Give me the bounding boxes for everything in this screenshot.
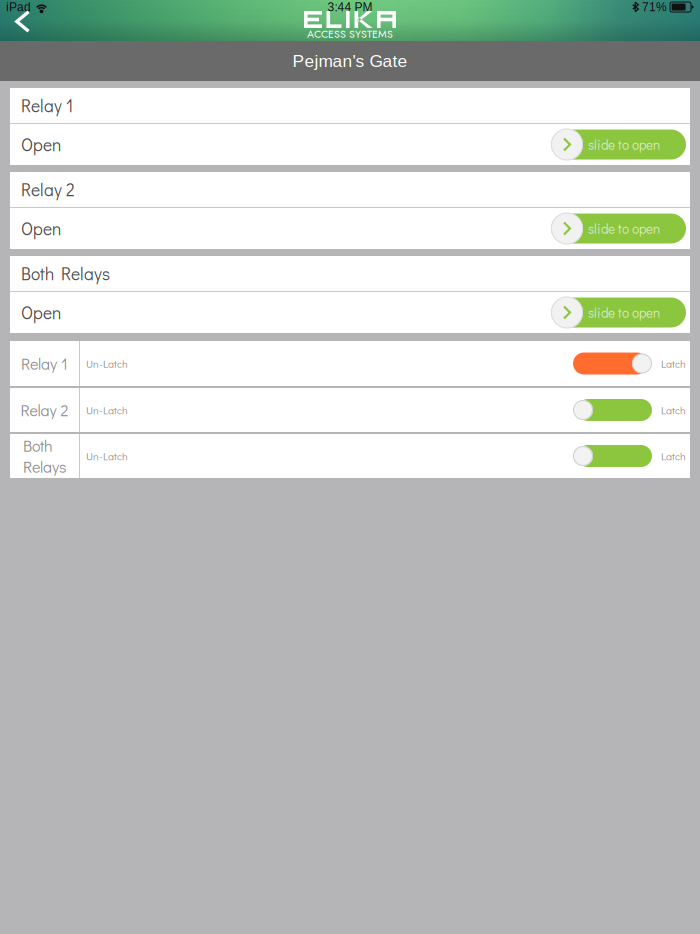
staticText: Relay 1 — [21, 94, 73, 117]
staticText: Open — [21, 217, 61, 240]
staticText: slide to open — [588, 304, 660, 321]
staticText: Both Relays — [23, 435, 66, 477]
button[interactable]: Both Relays — [10, 434, 690, 478]
staticText: Latch — [661, 403, 686, 417]
button[interactable]: Relay 1 — [10, 341, 690, 386]
button[interactable]: Open — [10, 208, 690, 249]
staticText: Relay 2 — [21, 178, 75, 201]
button[interactable]: Open — [10, 124, 690, 165]
staticText: Relay 1 — [21, 353, 68, 374]
staticText: Pejman's Gate — [292, 51, 407, 71]
staticText: Open — [21, 301, 61, 324]
staticText: slide to open — [588, 136, 660, 153]
button[interactable]: Back — [0, 0, 30, 33]
staticText: Open — [21, 133, 61, 156]
staticText: 71% — [642, 0, 667, 14]
staticText: Both Relays — [21, 262, 110, 285]
staticText: slide to open — [588, 220, 660, 237]
staticText: Latch — [661, 356, 686, 370]
staticText: Latch — [661, 449, 686, 463]
staticText: iPad — [6, 0, 31, 14]
staticText: Un-Latch — [86, 356, 128, 370]
staticText: Relay 2 — [20, 399, 68, 420]
staticText: Un-Latch — [86, 403, 128, 417]
button[interactable]: Open — [10, 292, 690, 333]
button[interactable]: Relay 2 — [10, 388, 690, 432]
staticText: ACCESS SYSTEMS — [307, 26, 393, 42]
staticText: Un-Latch — [86, 449, 128, 463]
staticText: 3:44 PM — [327, 0, 372, 14]
